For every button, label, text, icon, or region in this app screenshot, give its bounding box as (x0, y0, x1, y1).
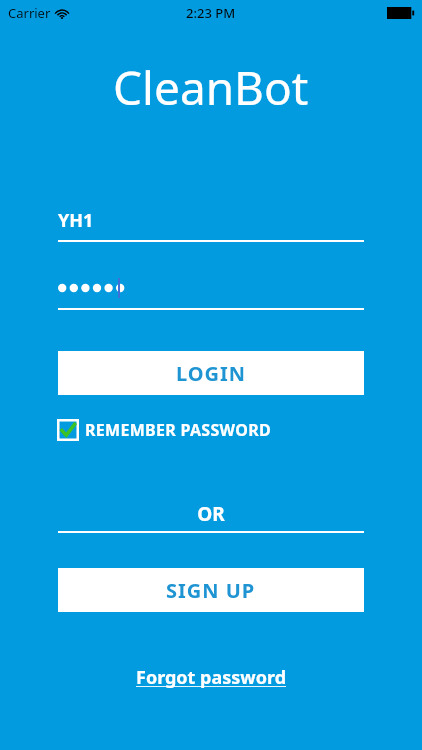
button[interactable] (58, 274, 364, 302)
staticText: OR (197, 501, 225, 527)
button[interactable]: REMEMBER PASSWORD (57, 416, 271, 444)
button[interactable]: Forgot password (130, 663, 293, 692)
button[interactable]: LOGIN (58, 351, 364, 395)
staticText: SIGN UP (166, 577, 256, 604)
staticText: 2:23 PM (186, 4, 236, 22)
staticText: Forgot password (136, 665, 287, 690)
staticText: CleanBot (113, 56, 309, 119)
button[interactable]: SIGN UP (58, 568, 364, 612)
staticText: YH1 (58, 208, 94, 233)
staticText: Carrier (8, 4, 51, 22)
button[interactable]: YH1 (58, 206, 364, 234)
staticText: REMEMBER PASSWORD (85, 419, 271, 441)
staticText: LOGIN (176, 360, 247, 387)
